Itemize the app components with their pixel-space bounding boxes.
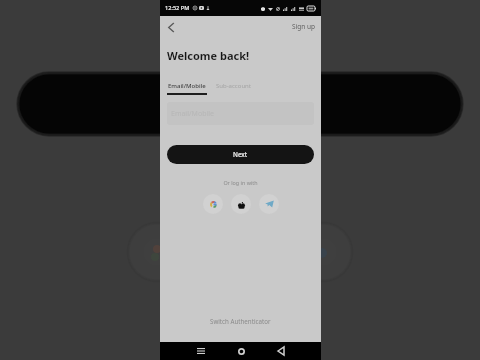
button[interactable]: Sub-account	[216, 82, 251, 90]
button[interactable]: Sign in with Google	[203, 194, 223, 214]
button[interactable]: Sign in with Apple	[231, 194, 251, 214]
staticText: Email/Mobile	[168, 82, 206, 90]
staticText: Sign up	[292, 22, 315, 31]
button[interactable]: Switch Authenticator	[160, 317, 321, 325]
staticText: Welcome back!	[167, 48, 250, 63]
button[interactable]: Back	[261, 342, 301, 360]
staticText: Next	[233, 150, 248, 159]
button[interactable]: Sign up	[286, 18, 321, 35]
staticText: Or log in with	[160, 179, 321, 186]
button[interactable]: Recent apps	[181, 342, 221, 360]
staticText: Sub-account	[216, 82, 251, 90]
button[interactable]: Sign in with Telegram	[259, 194, 279, 214]
staticText: 12:52 PM	[165, 4, 190, 12]
button[interactable]: Home	[221, 342, 261, 360]
button[interactable]: Next	[167, 145, 314, 164]
staticText: Email/Mobile	[171, 109, 215, 119]
button[interactable]: Email/Mobile	[168, 82, 206, 90]
staticText: Switch Authenticator	[210, 317, 271, 325]
button[interactable]: Back	[162, 18, 180, 36]
